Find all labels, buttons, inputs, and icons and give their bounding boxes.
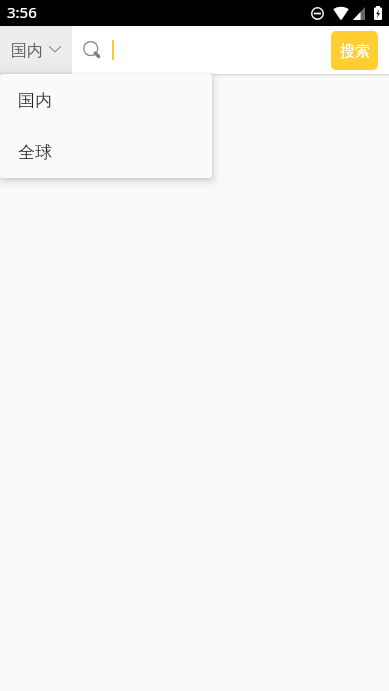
button[interactable]: 全球: [0, 126, 212, 178]
staticText: 国内: [11, 41, 43, 61]
button[interactable]: 国内: [0, 26, 72, 74]
staticText: 全球: [18, 142, 52, 163]
other: Search: [81, 39, 103, 61]
button[interactable]: 搜索: [331, 31, 378, 70]
staticText: 国内: [18, 90, 52, 111]
button[interactable]: 国内: [0, 74, 212, 126]
staticText: 搜索: [340, 42, 370, 61]
staticText: 3:56: [7, 2, 37, 22]
